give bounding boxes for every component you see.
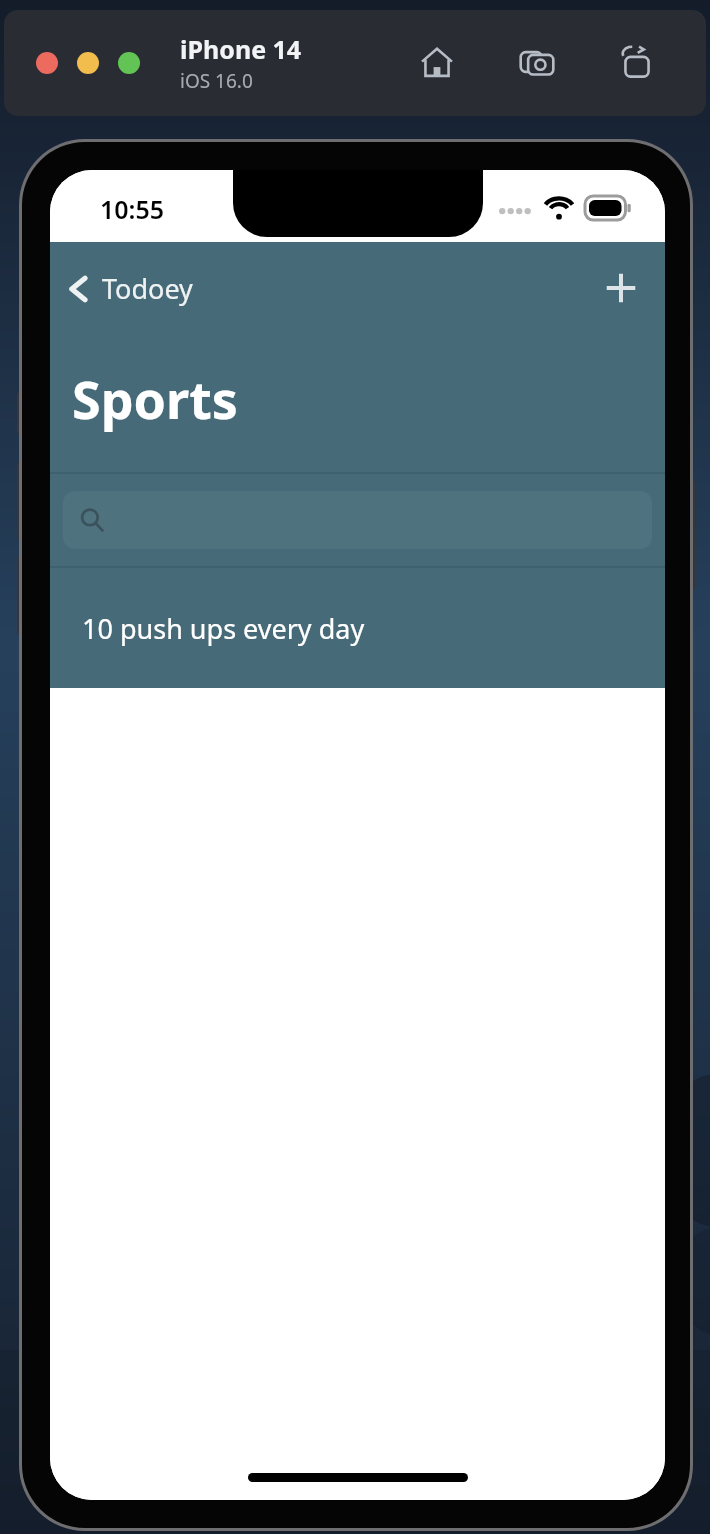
button[interactable]: Add item xyxy=(597,264,645,312)
button[interactable]: Minimise xyxy=(77,52,99,74)
staticText: 10 push ups every day xyxy=(82,610,365,647)
button[interactable]: Rotate xyxy=(614,40,660,86)
button[interactable]: Screenshot xyxy=(514,40,560,86)
staticText: Sports xyxy=(72,363,238,434)
staticText: 10:55 xyxy=(100,192,165,226)
staticText: iOS 16.0 xyxy=(180,68,253,94)
staticText: iPhone 14 xyxy=(180,32,302,66)
button[interactable]: 10 push ups every day xyxy=(50,568,665,688)
staticText: Todoey xyxy=(102,270,193,307)
button[interactable]: Todoey xyxy=(62,270,193,307)
button[interactable]: Maximise xyxy=(118,52,140,74)
button[interactable]: Home xyxy=(414,40,460,86)
button[interactable]: Close xyxy=(36,52,58,74)
